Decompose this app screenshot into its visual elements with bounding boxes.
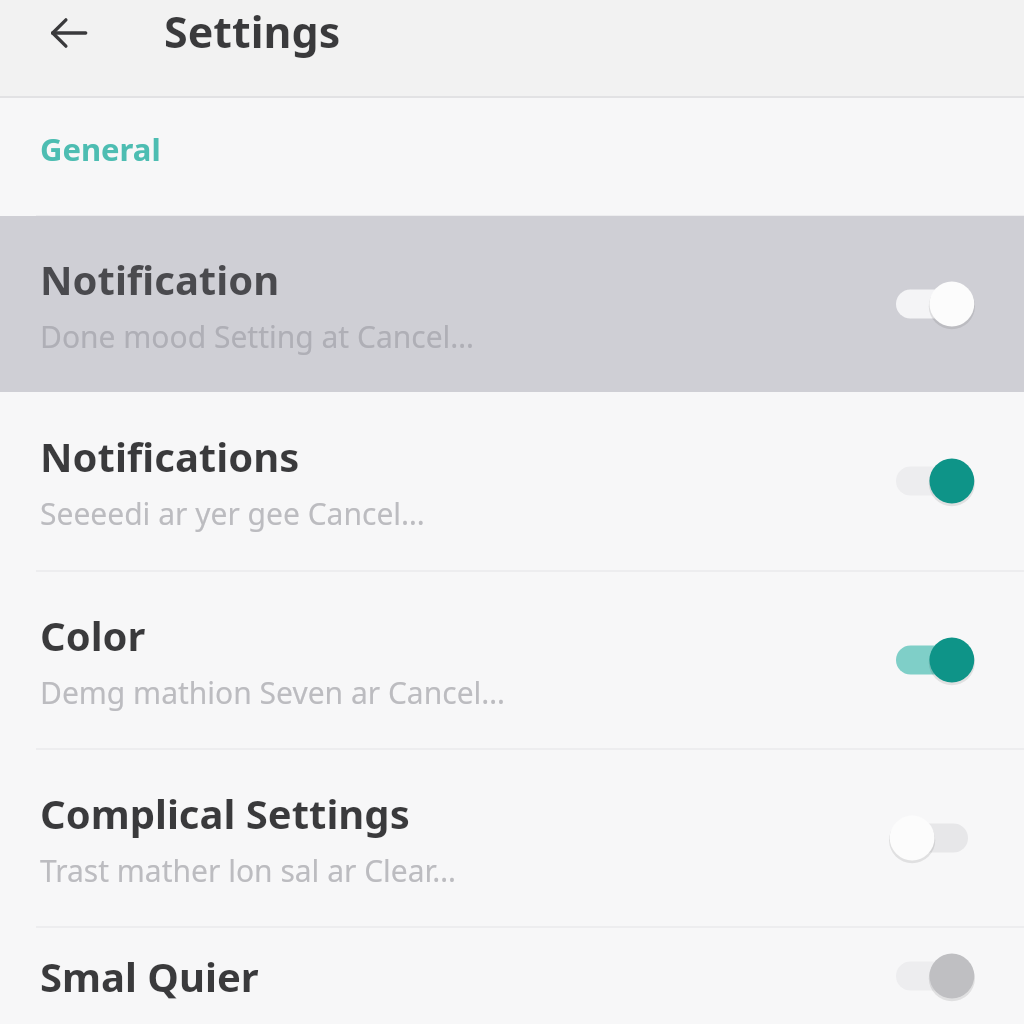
staticText: General — [40, 128, 161, 170]
staticText: Settings — [164, 2, 341, 61]
button[interactable]: Toggle — [882, 266, 982, 342]
button[interactable]: Toggle — [882, 800, 982, 876]
button[interactable]: Complical Settings — [0, 750, 1024, 926]
button[interactable]: Notification — [0, 216, 1024, 392]
button[interactable]: Toggle — [882, 622, 982, 698]
button[interactable]: Color — [0, 572, 1024, 748]
staticText: Trast mather lon sal ar Clear… — [40, 850, 456, 891]
button[interactable]: Toggle — [882, 443, 982, 519]
staticText: Done mood Setting at Cancel… — [40, 316, 475, 357]
staticText: Smal Quier — [40, 949, 259, 1003]
button[interactable]: Smal Quier — [0, 928, 1024, 1024]
staticText: Demg mathion Seven ar Cancel… — [40, 672, 506, 713]
button[interactable]: Back — [36, 0, 102, 66]
staticText: Seeeedi ar yer gee Cancel… — [40, 493, 425, 534]
staticText: Complical Settings — [40, 786, 410, 840]
button[interactable]: Notifications — [0, 392, 1024, 570]
staticText: Color — [40, 608, 146, 662]
staticText: Notification — [40, 252, 280, 306]
staticText: Notifications — [40, 429, 300, 483]
button[interactable]: Toggle — [882, 938, 982, 1014]
